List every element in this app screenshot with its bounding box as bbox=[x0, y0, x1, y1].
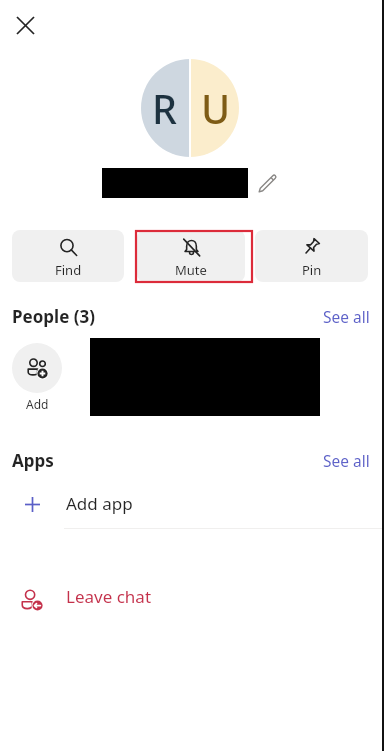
staticText: People (3) bbox=[12, 305, 95, 327]
button[interactable]: Leave chat bbox=[0, 575, 384, 619]
staticText: R bbox=[152, 82, 177, 136]
staticText: Find bbox=[55, 261, 82, 279]
staticText: Apps bbox=[12, 449, 54, 471]
staticText: Pin bbox=[302, 261, 322, 279]
button[interactable]: See all bbox=[323, 450, 370, 471]
button[interactable]: Mute bbox=[137, 230, 245, 282]
staticText: Add bbox=[26, 396, 49, 412]
button[interactable]: Add app bbox=[0, 482, 384, 526]
staticText: Leave chat bbox=[66, 585, 152, 608]
button[interactable]: See all bbox=[323, 306, 370, 327]
staticText: Mute bbox=[175, 261, 207, 279]
staticText: See all bbox=[323, 306, 370, 327]
button[interactable]: Close bbox=[7, 7, 44, 44]
button[interactable]: Edit name bbox=[253, 169, 281, 197]
staticText: Add app bbox=[66, 492, 133, 515]
staticText: See all bbox=[323, 450, 370, 471]
button[interactable]: Find bbox=[12, 230, 124, 282]
button[interactable]: Add bbox=[12, 343, 62, 412]
staticText: U bbox=[201, 82, 231, 136]
button[interactable]: Pin bbox=[255, 230, 368, 282]
